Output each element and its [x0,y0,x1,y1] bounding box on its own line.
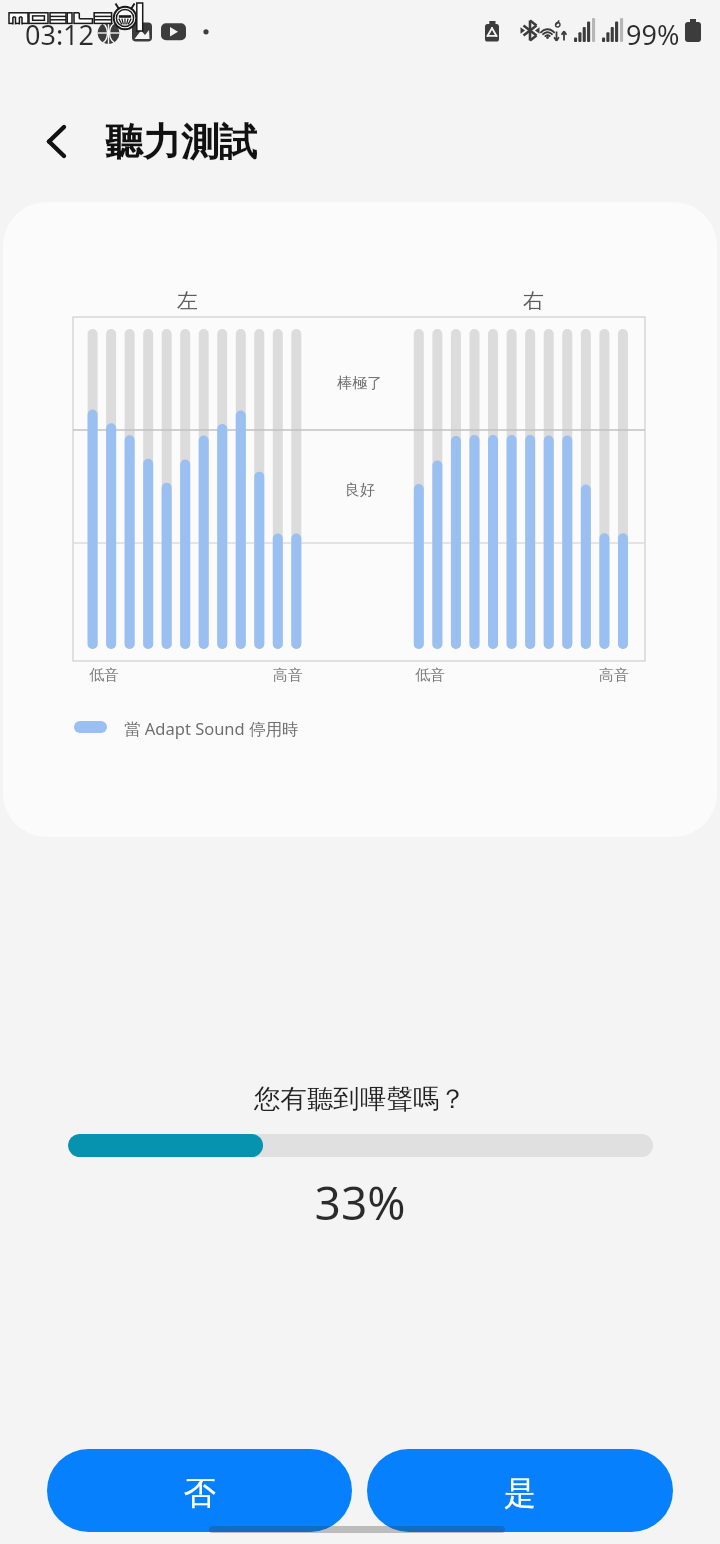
staticText: 高音 [273,666,303,685]
staticText: 99% [626,16,680,53]
staticText: 您有聽到嗶聲嗎？ [0,1082,720,1115]
staticText: 良好 [345,481,375,500]
staticText: 聽力測試 [105,118,257,166]
staticText: 左 [177,288,198,314]
staticText: 右 [523,288,544,314]
staticText: 當 Adapt Sound 停用時 [124,717,299,740]
button[interactable]: 是 [367,1449,673,1532]
button[interactable]: Back [24,106,90,172]
staticText: 低音 [89,666,119,685]
staticText: 03:12 [25,16,95,53]
staticText: 棒極了 [337,374,382,393]
staticText: 否 [184,1473,216,1513]
staticText: 高音 [599,666,629,685]
staticText: 是 [504,1473,536,1513]
staticText: 33% [0,1171,720,1234]
staticText: 低音 [415,666,445,685]
button[interactable]: 否 [47,1449,352,1532]
